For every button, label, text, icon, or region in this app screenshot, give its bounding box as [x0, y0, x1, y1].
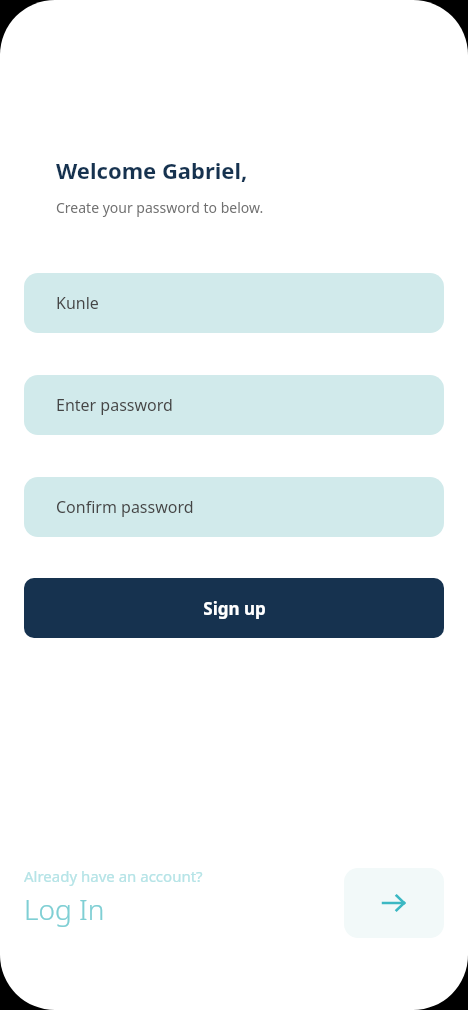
staticText: Kunle [56, 292, 99, 314]
staticText: Welcome Gabriel, [56, 155, 248, 185]
button[interactable]: Enter password [24, 375, 444, 435]
staticText: Confirm password [56, 496, 194, 518]
staticText: Already have an account? [24, 866, 203, 886]
staticText: Log In [24, 890, 105, 928]
button[interactable]: Kunle [24, 273, 444, 333]
button[interactable]: Already have an account? [24, 866, 203, 928]
button[interactable]: Confirm password [24, 477, 444, 537]
button[interactable]: Sign up [24, 578, 444, 638]
button[interactable]: Log In [344, 868, 444, 938]
staticText: Enter password [56, 394, 173, 416]
staticText: Sign up [203, 597, 266, 620]
staticText: Create your password to below. [56, 198, 264, 217]
